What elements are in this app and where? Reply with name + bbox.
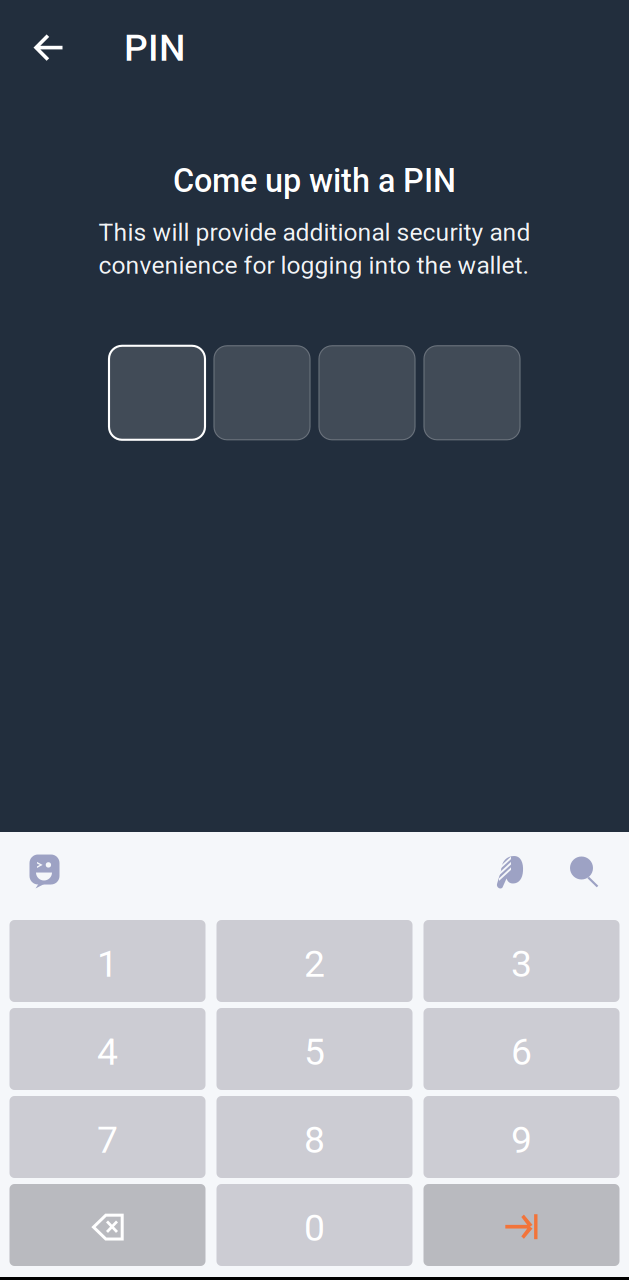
staticText: 7 <box>97 1118 118 1162</box>
button[interactable]: 3 <box>423 920 619 1002</box>
button[interactable]: Backspace <box>9 1184 205 1266</box>
button[interactable]: 7 <box>9 1096 205 1178</box>
button[interactable]: 0 <box>216 1184 412 1266</box>
staticText: Come up with a PIN <box>173 162 456 200</box>
button[interactable]: Enter <box>423 1184 619 1266</box>
staticText: 6 <box>511 1030 532 1074</box>
staticText: 9 <box>511 1118 532 1162</box>
staticText: 4 <box>97 1030 118 1074</box>
staticText: 2 <box>304 942 325 986</box>
staticText: 8 <box>304 1118 325 1162</box>
staticText: 0 <box>304 1206 325 1250</box>
staticText: This will provide additional security an… <box>98 218 530 280</box>
button[interactable]: 4 <box>9 1008 205 1090</box>
staticText: 3 <box>511 942 532 986</box>
staticText: 1 <box>97 942 118 986</box>
button[interactable]: 5 <box>216 1008 412 1090</box>
button[interactable]: Stickers <box>495 854 525 889</box>
button[interactable]: 1 <box>9 920 205 1002</box>
button[interactable]: 9 <box>423 1096 619 1178</box>
button[interactable]: 8 <box>216 1096 412 1178</box>
button[interactable]: Emoji <box>29 854 60 889</box>
button[interactable]: 6 <box>423 1008 619 1090</box>
button[interactable]: Search <box>570 856 600 887</box>
staticText: PIN <box>124 26 185 70</box>
button[interactable]: Back <box>0 0 85 96</box>
staticText: 5 <box>304 1030 325 1074</box>
button[interactable]: 2 <box>216 920 412 1002</box>
